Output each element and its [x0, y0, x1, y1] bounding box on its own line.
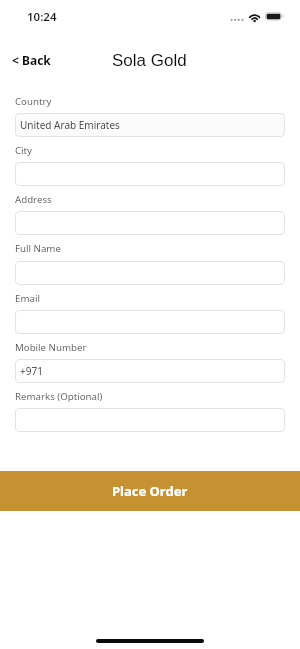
staticText: Address — [15, 193, 52, 206]
staticText: Country — [15, 95, 52, 108]
button[interactable]: Email — [15, 310, 285, 334]
staticText: Place Order — [112, 482, 188, 500]
button[interactable]: Full Name — [15, 261, 285, 285]
staticText: +971 — [20, 364, 43, 378]
button[interactable]: Country — [15, 113, 285, 137]
button[interactable]: Remarks (Optional) — [15, 408, 285, 432]
staticText: Sola Gold — [112, 51, 187, 70]
staticText: 10:24 — [27, 9, 57, 25]
staticText: United Arab Emirates — [20, 118, 120, 132]
button[interactable]: Place Order — [0, 471, 300, 511]
staticText: < Back — [12, 52, 51, 68]
staticText: Email — [15, 292, 40, 305]
staticText: Remarks (Optional) — [15, 390, 103, 403]
other: Signal, Wi-Fi and battery status — [228, 10, 288, 26]
button[interactable]: < Back — [0, 46, 63, 74]
button[interactable]: Address — [15, 211, 285, 235]
button[interactable]: Mobile Number — [15, 359, 285, 383]
staticText: City — [15, 144, 33, 157]
staticText: Mobile Number — [15, 341, 87, 354]
button[interactable]: City — [15, 162, 285, 186]
staticText: Full Name — [15, 242, 61, 255]
